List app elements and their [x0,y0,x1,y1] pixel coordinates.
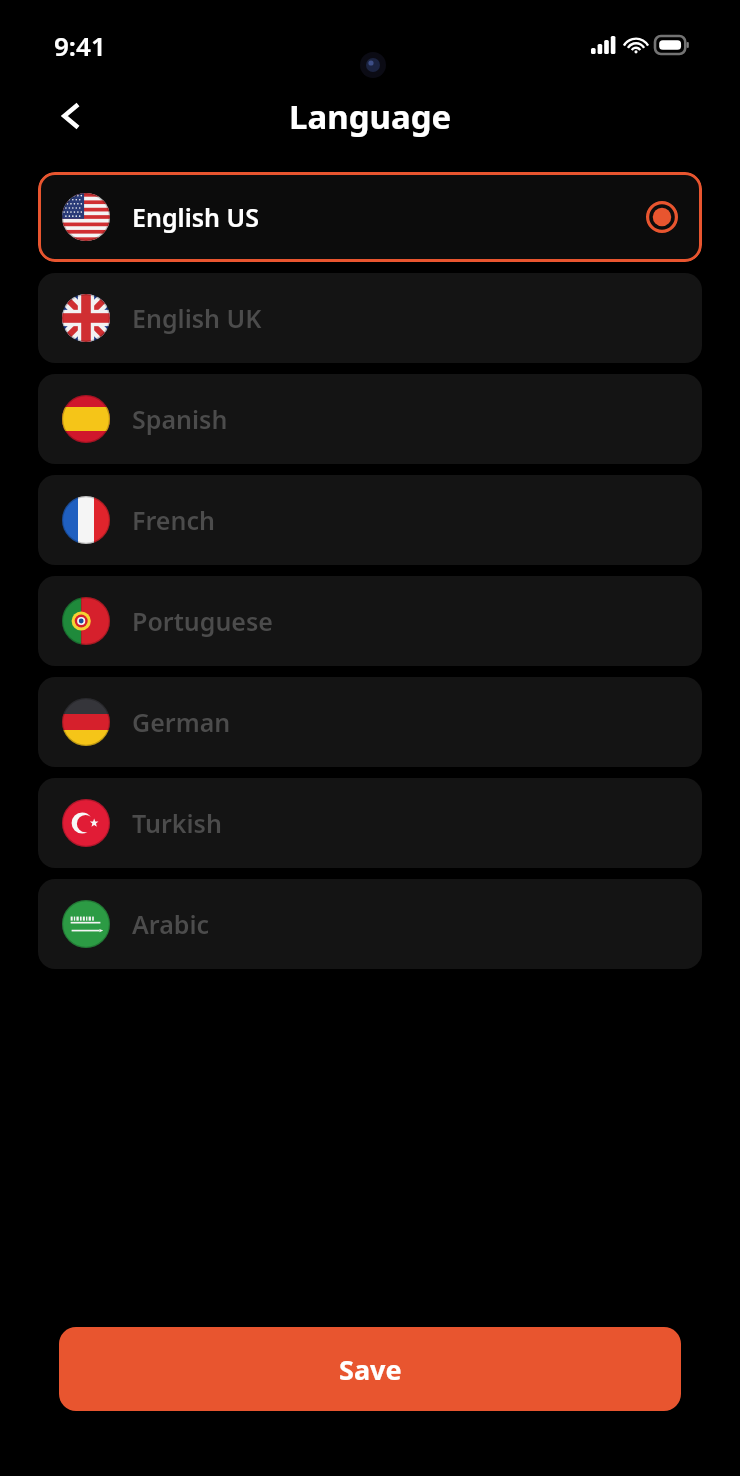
staticText: Spanish [132,402,678,436]
button[interactable]: Back [43,88,99,144]
staticText: Save [339,1351,402,1388]
staticText: Language [289,94,452,139]
button[interactable]: Spanish [38,374,702,464]
button[interactable]: Save [59,1327,681,1411]
button[interactable]: Arabic [38,879,702,969]
staticText: 9:41 [54,28,106,63]
staticText: English UK [132,301,678,335]
staticText: Portuguese [132,604,678,638]
button[interactable]: English UK [38,273,702,363]
staticText: German [132,705,678,739]
staticText: English US [132,200,646,234]
button[interactable]: Portuguese [38,576,702,666]
button[interactable]: English US [38,172,702,262]
button[interactable]: Turkish [38,778,702,868]
staticText: Turkish [132,806,678,840]
button[interactable]: German [38,677,702,767]
staticText: Arabic [132,907,678,941]
button[interactable]: French [38,475,702,565]
staticText: French [132,503,678,537]
